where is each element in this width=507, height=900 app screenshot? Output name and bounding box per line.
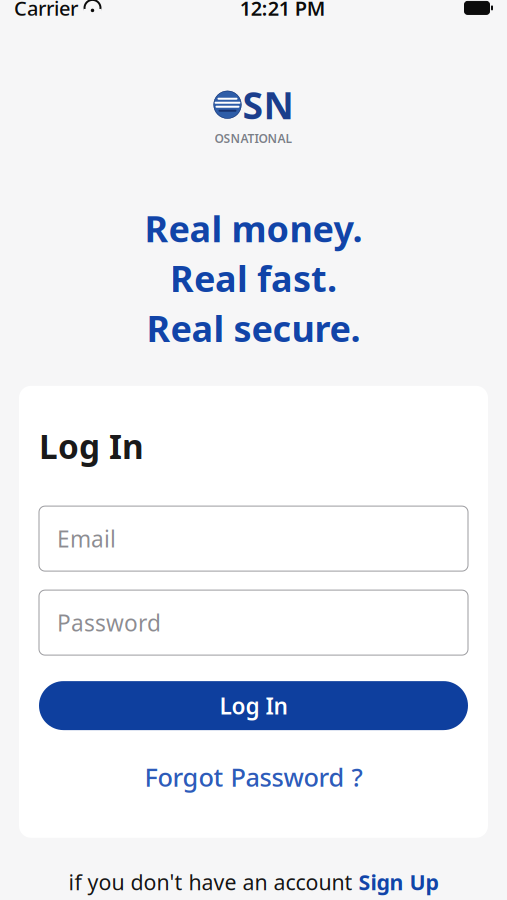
staticText: Real fast.	[170, 254, 337, 302]
staticText: Sign Up	[358, 868, 438, 896]
button[interactable]: Forgot Password ?	[39, 754, 468, 800]
staticText: Email	[57, 524, 116, 554]
staticText: Log In	[39, 424, 144, 468]
button[interactable]: Email	[39, 506, 468, 571]
button[interactable]: if you don't have an account	[0, 860, 507, 900]
staticText: Real money.	[144, 204, 362, 252]
button[interactable]: Password	[39, 590, 468, 655]
staticText: Carrier	[14, 0, 78, 21]
staticText: Log In	[219, 691, 287, 721]
staticText: OSNATIONAL	[214, 130, 292, 146]
staticText: Real secure.	[146, 304, 360, 352]
staticText: Forgot Password ?	[144, 760, 362, 794]
staticText: Password	[57, 608, 161, 638]
staticText: if you don't have an account	[68, 868, 352, 896]
button[interactable]: Log In	[39, 681, 468, 730]
staticText: 12:21 PM	[240, 0, 326, 21]
staticText: SN	[242, 80, 293, 129]
